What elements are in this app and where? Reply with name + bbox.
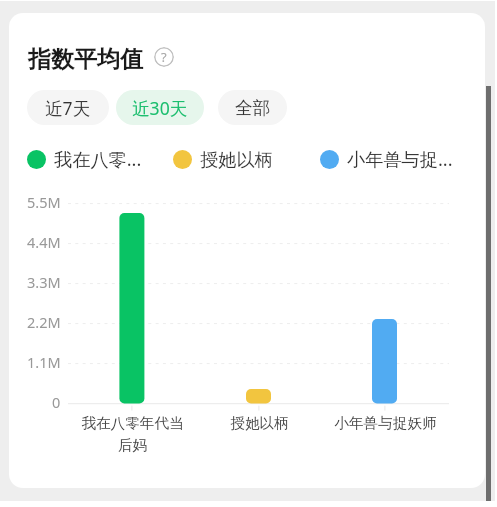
staticText: 小年兽与捉... — [347, 147, 453, 172]
button[interactable]: Help — [154, 47, 174, 67]
staticText: ? — [161, 48, 167, 66]
staticText: 5.5M — [27, 192, 61, 210]
button[interactable]: 全部 — [218, 90, 287, 125]
staticText: 我在八零... — [54, 147, 142, 172]
staticText: 我在八零年代当 后妈 — [81, 414, 184, 454]
staticText: 近7天 — [45, 96, 91, 120]
button[interactable]: 我在八零... — [27, 142, 142, 177]
button[interactable]: 授她以柄 — [173, 142, 273, 177]
staticText: 4.4M — [27, 232, 61, 250]
staticText: 全部 — [235, 97, 271, 119]
button[interactable]: 近30天 — [116, 90, 204, 125]
staticText: 2.2M — [27, 312, 61, 330]
staticText: 小年兽与捉妖师 — [334, 414, 437, 432]
button[interactable]: 小年兽与捉... — [320, 142, 453, 177]
button[interactable]: 近7天 — [27, 90, 109, 125]
staticText: 近30天 — [132, 96, 188, 120]
staticText: 0 — [52, 392, 61, 410]
staticText: 1.1M — [27, 352, 61, 370]
staticText: 授她以柄 — [200, 148, 273, 171]
staticText: 指数平均值 — [28, 45, 143, 74]
staticText: 授她以柄 — [230, 414, 289, 432]
staticText: 3.3M — [27, 272, 61, 290]
